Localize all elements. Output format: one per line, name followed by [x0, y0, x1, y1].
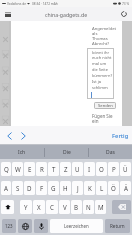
button[interactable]: V	[59, 200, 70, 214]
staticText: R	[40, 165, 44, 173]
button[interactable]: Backspace	[112, 200, 131, 214]
button[interactable]: H	[60, 181, 71, 195]
staticText: J	[77, 184, 79, 192]
staticText: I	[88, 165, 91, 173]
staticText: china-gadgets.de	[45, 11, 88, 18]
button[interactable]: Die	[45, 145, 88, 159]
button[interactable]: Reload page	[119, 9, 129, 19]
staticText: 08:34 · 1472 mAh	[32, 2, 58, 6]
staticText: Angemeldet als Thomas Abrecht?	[92, 26, 118, 46]
staticText: Ü	[123, 165, 128, 173]
button[interactable]: I	[84, 162, 95, 176]
staticText: A	[4, 184, 8, 192]
button[interactable]: O	[96, 162, 107, 176]
button[interactable]: Ö	[108, 181, 119, 195]
button[interactable]: B	[71, 200, 82, 214]
staticText: V	[63, 203, 67, 211]
button[interactable]: Leerzeichen	[50, 219, 103, 233]
staticText: M	[98, 203, 104, 211]
staticText: K	[88, 184, 92, 192]
staticText: C	[50, 203, 54, 211]
staticText: Fügen Sie ein	[92, 113, 116, 124]
staticText: Q	[4, 165, 9, 173]
button[interactable]: Reader view	[3, 9, 13, 19]
button[interactable]: M	[95, 200, 106, 214]
button[interactable]: G	[48, 181, 59, 195]
button[interactable]: Z	[60, 162, 71, 176]
staticText: B	[74, 203, 79, 211]
button[interactable]: N	[83, 200, 94, 214]
button[interactable]: Next field	[16, 126, 30, 145]
button[interactable]: R	[36, 162, 47, 176]
button[interactable]: D	[24, 181, 35, 195]
button[interactable]: S	[12, 181, 23, 195]
staticText: Ich	[18, 149, 26, 156]
button[interactable]: L	[96, 181, 107, 195]
staticText: U	[75, 165, 80, 173]
staticText: Vodafone.de	[7, 2, 26, 6]
button[interactable]: Previous field	[2, 126, 16, 145]
button[interactable]: K	[84, 181, 95, 195]
staticText: Fertig	[112, 132, 129, 140]
staticText: 73 %	[122, 2, 130, 6]
staticText: könnt ihr euch nicht mal um die Seite kü…	[92, 50, 113, 91]
button[interactable]: Fertig	[112, 126, 129, 145]
staticText: Senden	[98, 103, 113, 109]
staticText: Ä	[124, 184, 128, 192]
staticText: Die	[63, 149, 71, 156]
button[interactable]: Dictation	[34, 219, 48, 233]
staticText: O	[99, 165, 104, 173]
staticText: Leerzeichen	[64, 223, 89, 229]
button[interactable]: 123	[2, 219, 16, 233]
button[interactable]: C	[46, 200, 58, 214]
staticText: W	[15, 165, 21, 173]
button[interactable]: J	[72, 181, 83, 195]
button[interactable]: Shift	[1, 200, 14, 214]
staticText: S	[16, 184, 20, 192]
staticText: G	[51, 184, 56, 192]
staticText: H	[63, 184, 68, 192]
button[interactable]: A	[1, 181, 11, 195]
button[interactable]: Switch keyboard	[18, 219, 32, 233]
button[interactable]: E	[24, 162, 35, 176]
button[interactable]: F	[36, 181, 47, 195]
staticText: 123	[5, 223, 13, 229]
button[interactable]: Senden	[94, 102, 116, 109]
button[interactable]: Ich	[0, 145, 44, 159]
staticText: Z	[64, 165, 68, 173]
staticText: Y	[24, 203, 28, 211]
staticText: P	[112, 165, 116, 173]
staticText: Return	[110, 223, 125, 229]
staticText: L	[100, 184, 104, 192]
button[interactable]: P	[108, 162, 119, 176]
button[interactable]: Das	[89, 145, 132, 159]
staticText: Das	[106, 149, 115, 156]
button[interactable]: X	[33, 200, 45, 214]
button[interactable]: Y	[20, 200, 32, 214]
button[interactable]: W	[12, 162, 23, 176]
staticText: F	[40, 184, 44, 192]
button[interactable]: Ä	[120, 181, 131, 195]
staticText: N	[86, 203, 91, 211]
button[interactable]: T	[48, 162, 59, 176]
button[interactable]: U	[72, 162, 83, 176]
staticText: Ö	[111, 184, 116, 192]
staticText: D	[27, 184, 32, 192]
staticText: E	[28, 165, 32, 173]
button[interactable]: Q	[1, 162, 11, 176]
staticText: T	[52, 165, 56, 173]
button[interactable]: Ü	[120, 162, 131, 176]
button[interactable]: Return	[105, 219, 130, 233]
staticText: X	[37, 203, 41, 211]
